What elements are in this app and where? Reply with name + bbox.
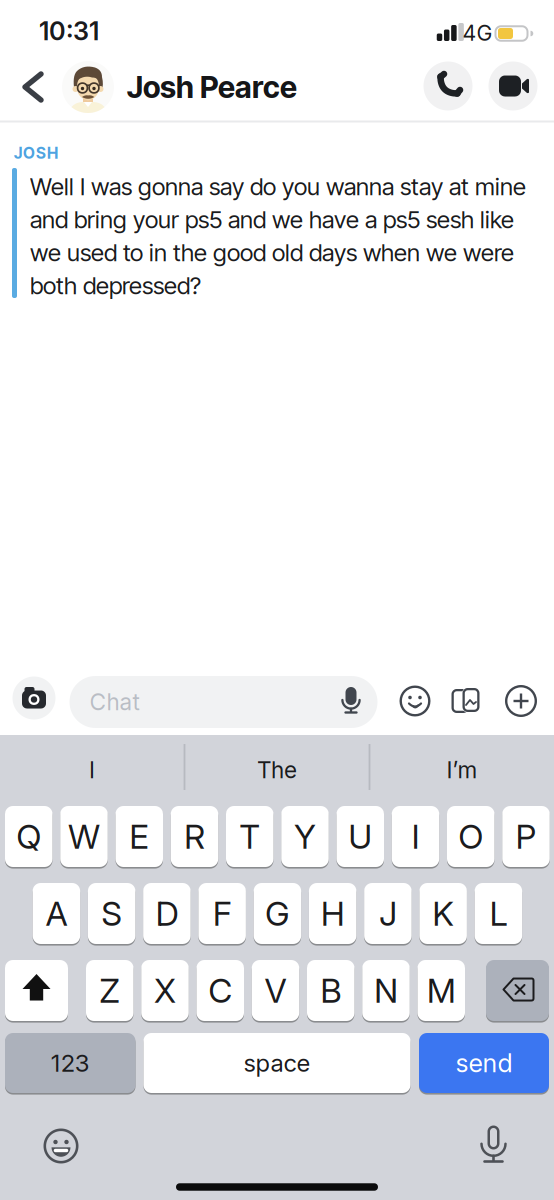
button[interactable]: W [60, 805, 108, 868]
button[interactable]: 123 [5, 1032, 135, 1094]
button[interactable]: X [141, 959, 189, 1022]
button[interactable]: H [309, 882, 356, 945]
button[interactable]: F [198, 882, 246, 945]
button[interactable]: J [364, 882, 412, 945]
staticText: V [264, 971, 286, 1010]
button[interactable]: C [196, 959, 244, 1022]
button[interactable] [12, 676, 55, 719]
staticText: we used to in the good old days when we … [30, 238, 514, 267]
button[interactable]: N [362, 959, 410, 1022]
staticText: K [432, 894, 454, 933]
button[interactable]: A [33, 882, 80, 945]
button[interactable]: G [254, 882, 301, 945]
button[interactable]: U [336, 805, 384, 868]
button[interactable]: B [307, 959, 354, 1022]
button[interactable]: The [192, 745, 362, 795]
button[interactable]: Z [86, 959, 133, 1022]
button[interactable]: space [143, 1032, 410, 1094]
staticText: X [154, 971, 176, 1010]
button[interactable] [473, 1124, 513, 1164]
button[interactable]: R [171, 805, 218, 868]
button[interactable]: send [419, 1032, 549, 1094]
button[interactable] [449, 684, 483, 718]
button[interactable] [43, 1128, 78, 1163]
button[interactable]: P [502, 805, 550, 868]
button[interactable]: M [417, 959, 465, 1022]
button[interactable]: V [252, 959, 299, 1022]
staticText: W [68, 817, 100, 856]
staticText: I [89, 757, 95, 783]
staticText: 4G [462, 20, 492, 46]
button[interactable]: T [226, 805, 273, 868]
staticText: space [243, 1049, 310, 1077]
staticText: J [379, 894, 397, 933]
staticText: A [45, 894, 67, 933]
staticText: E [129, 817, 149, 856]
button[interactable]: Y [281, 805, 329, 868]
staticText: D [155, 894, 178, 933]
button[interactable]: Chat [69, 676, 377, 728]
staticText: T [239, 817, 260, 856]
button[interactable] [423, 61, 472, 110]
staticText: S [101, 894, 122, 933]
staticText: 123 [51, 1049, 90, 1077]
staticText: R [184, 817, 205, 856]
button[interactable]: Q [5, 805, 52, 868]
button[interactable] [505, 685, 537, 717]
button[interactable]: O [447, 805, 494, 868]
button[interactable] [488, 61, 537, 110]
button[interactable]: I’m [377, 745, 547, 795]
staticText: C [208, 971, 232, 1010]
button[interactable] [399, 685, 430, 716]
button[interactable]: S [88, 882, 135, 945]
staticText: P [515, 817, 536, 856]
staticText: L [489, 894, 507, 933]
button[interactable] [62, 61, 114, 113]
staticText: I’m [446, 757, 477, 783]
staticText: send [455, 1048, 512, 1078]
staticText: 10:31 [39, 16, 99, 46]
button[interactable]: D [143, 882, 191, 945]
staticText: Q [16, 817, 41, 856]
staticText: I [411, 817, 419, 856]
button[interactable]: E [115, 805, 163, 868]
staticText: and bring your ps5 and we have a ps5 ses… [30, 205, 514, 234]
staticText: H [321, 894, 345, 933]
staticText: J O S H [14, 143, 58, 162]
staticText: N [374, 971, 398, 1010]
button[interactable]: I [392, 805, 439, 868]
staticText: Y [294, 817, 316, 856]
staticText: U [348, 817, 372, 856]
button[interactable]: I [7, 745, 177, 795]
staticText: Z [99, 971, 120, 1010]
staticText: Josh Pearce [127, 69, 297, 105]
button[interactable] [486, 959, 549, 1022]
button[interactable]: K [419, 882, 467, 945]
staticText: F [213, 894, 232, 933]
staticText: Chat [89, 689, 139, 715]
staticText: M [427, 971, 456, 1010]
staticText: G [265, 894, 290, 933]
button[interactable] [5, 959, 68, 1022]
staticText: The [257, 757, 297, 783]
staticText: both depressed? [30, 271, 201, 300]
button[interactable] [335, 684, 367, 716]
button[interactable] [13, 65, 53, 109]
staticText: B [320, 971, 341, 1010]
button[interactable]: L [475, 882, 522, 945]
staticText: Well I was gonna say do you wanna stay a… [30, 172, 526, 201]
staticText: O [458, 817, 483, 856]
